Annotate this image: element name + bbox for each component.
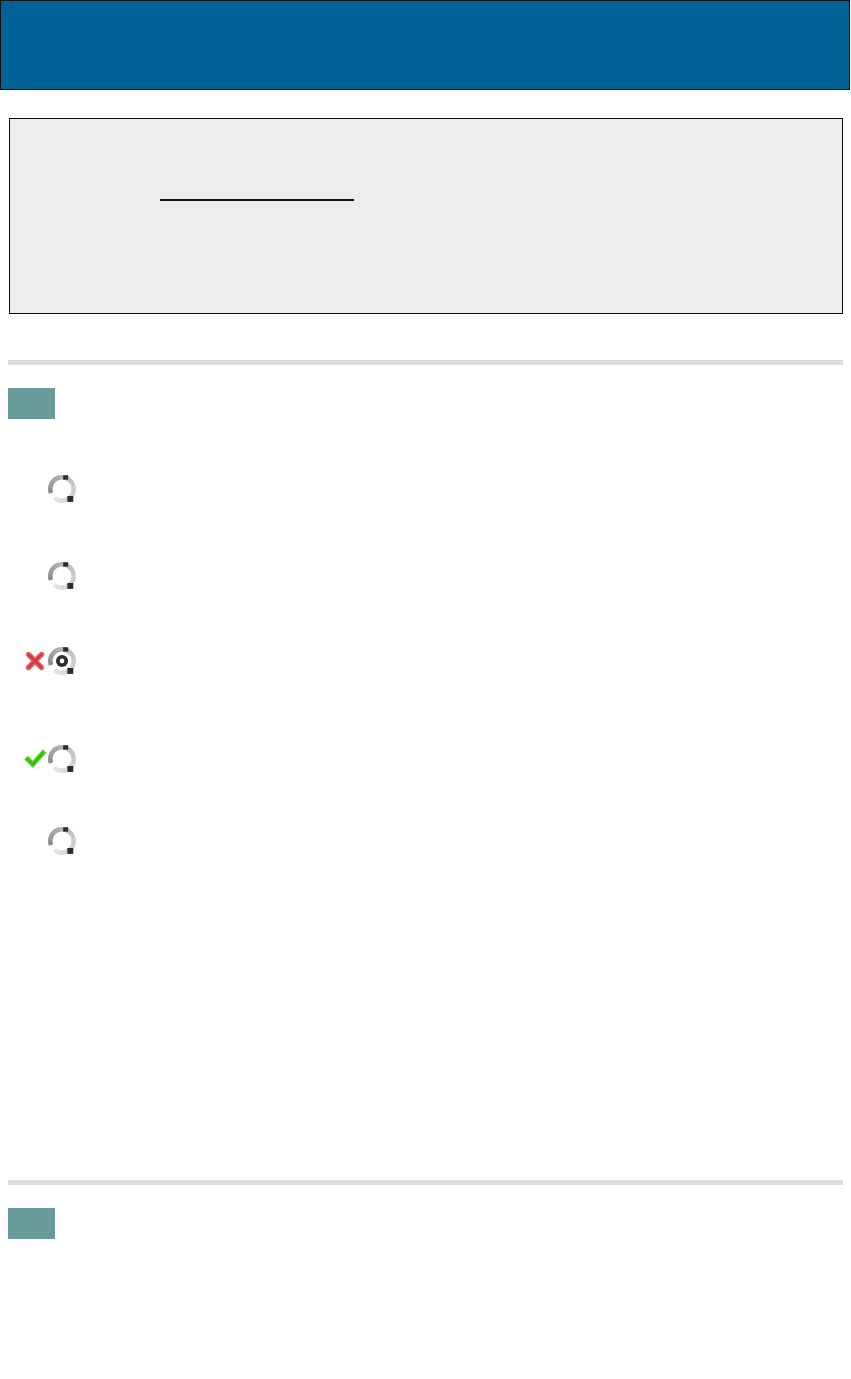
button[interactable]: Header banner bbox=[0, 0, 850, 90]
button[interactable]: Loading bbox=[0, 824, 851, 858]
button[interactable]: Failed item, loading bbox=[0, 644, 851, 678]
button[interactable]: Loading bbox=[0, 472, 851, 506]
button[interactable]: Loading bbox=[0, 559, 851, 593]
button[interactable]: Passed item, loading bbox=[0, 742, 851, 776]
